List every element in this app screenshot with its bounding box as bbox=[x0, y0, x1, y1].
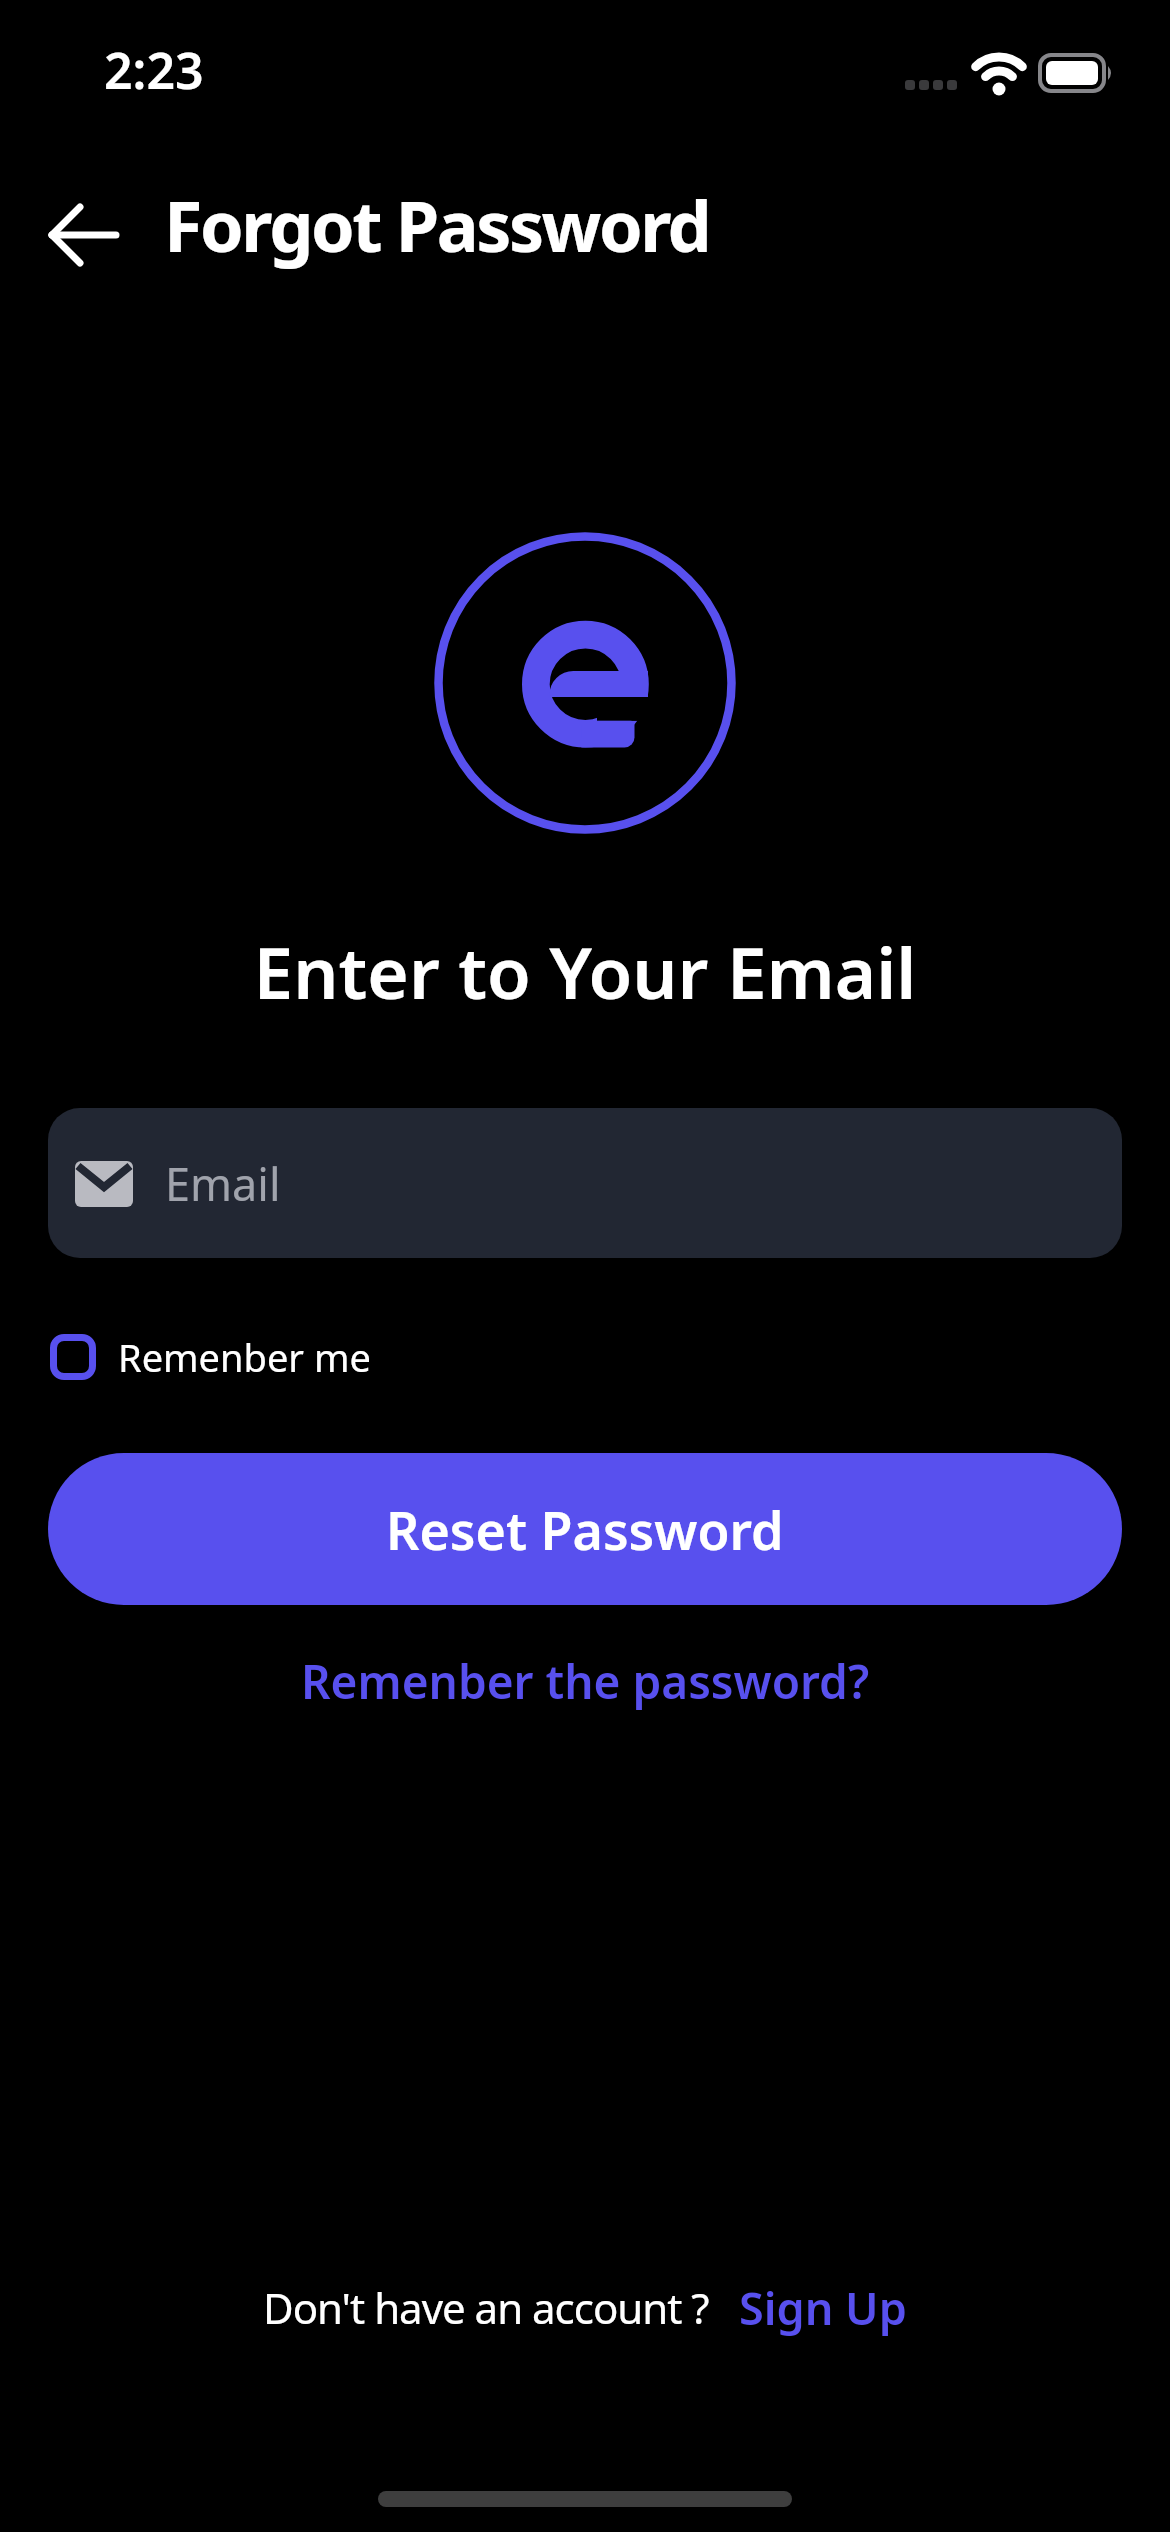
staticText: 2:23 bbox=[104, 36, 204, 104]
staticText: Reset Password bbox=[386, 1494, 784, 1565]
button[interactable]: Remenber me bbox=[50, 1331, 371, 1383]
button[interactable]: Sign Up bbox=[739, 2277, 907, 2338]
staticText: Email bbox=[165, 1153, 281, 1214]
button[interactable] bbox=[25, 195, 135, 279]
staticText: Forgot Password bbox=[164, 177, 710, 272]
button[interactable]: Remenber the password? bbox=[301, 1650, 870, 1713]
staticText: Don't have an account ? bbox=[263, 2279, 709, 2336]
button[interactable]: Reset Password bbox=[48, 1453, 1122, 1605]
staticText: Enter to Your Email bbox=[0, 923, 1170, 1020]
button[interactable]: Email bbox=[48, 1108, 1122, 1258]
staticText: Remenber me bbox=[118, 1331, 371, 1383]
